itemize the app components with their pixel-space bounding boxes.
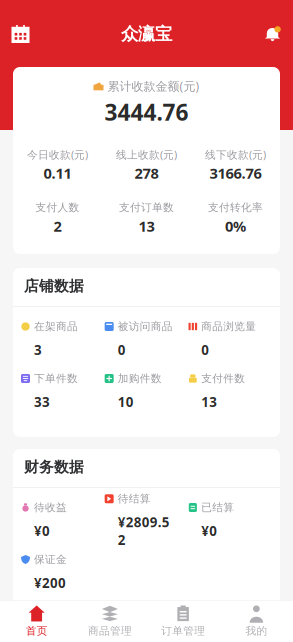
staticText: 0%	[225, 216, 246, 236]
staticText: 待结算	[118, 492, 151, 505]
staticText: 财务数据	[24, 458, 84, 476]
staticText: 2	[53, 216, 61, 236]
staticText: 线上收款(元)	[116, 147, 177, 162]
staticText: 保证金	[34, 553, 67, 566]
staticText: 订单管理	[161, 624, 205, 637]
staticText: 被访问商品	[118, 320, 173, 333]
button[interactable]: 商品管理	[73, 601, 146, 642]
staticText: 我的	[245, 624, 267, 637]
staticText: 已结算	[201, 501, 234, 514]
button[interactable]: Notifications	[252, 6, 293, 62]
staticText: 33	[34, 393, 50, 411]
staticText: 在架商品	[34, 320, 78, 333]
staticText: 支付转化率	[208, 201, 263, 214]
staticText: 店铺数据	[24, 277, 84, 295]
staticText: 0	[201, 341, 209, 359]
staticText: 支付件数	[201, 372, 245, 385]
button[interactable]: 我的	[220, 601, 293, 642]
staticText: ¥200	[34, 574, 66, 592]
staticText: 3444.76	[104, 97, 188, 127]
button[interactable]: 订单管理	[146, 601, 220, 642]
staticText: 众瀛宝	[121, 23, 172, 45]
staticText: 10	[118, 393, 134, 411]
staticText: 首页	[26, 624, 48, 637]
staticText: 3	[34, 341, 42, 359]
staticText: 0.11	[43, 163, 71, 183]
staticText: 商品管理	[88, 624, 132, 637]
staticText: 加购件数	[118, 372, 162, 385]
button[interactable]: Calendar	[0, 6, 41, 62]
staticText: ¥0	[201, 522, 217, 540]
staticText: 13	[138, 216, 154, 236]
staticText: 下单件数	[34, 372, 78, 385]
staticText: 278	[134, 163, 158, 183]
staticText: 3166.76	[209, 163, 261, 183]
staticText: 支付人数	[35, 201, 79, 214]
staticText: 支付订单数	[119, 201, 174, 214]
staticText: 累计收款金额(元)	[107, 78, 199, 94]
staticText: ¥2809.52	[118, 513, 170, 549]
staticText: 商品浏览量	[201, 320, 256, 333]
staticText: 待收益	[34, 501, 67, 514]
staticText: 今日收款(元)	[27, 147, 88, 162]
staticText: 13	[201, 393, 217, 411]
staticText: 线下收款(元)	[205, 147, 266, 162]
staticText: 0	[118, 341, 126, 359]
button[interactable]: 首页	[0, 601, 73, 642]
staticText: ¥0	[34, 522, 50, 540]
